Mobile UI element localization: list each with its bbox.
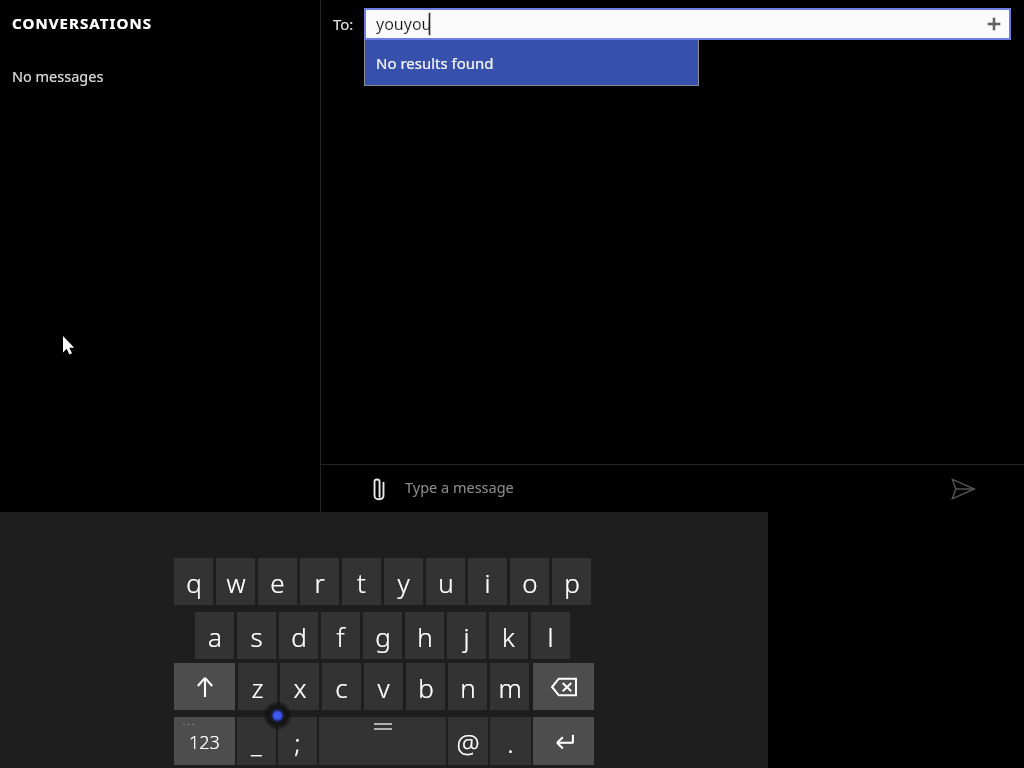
button[interactable]: a <box>195 612 234 659</box>
staticText: r <box>314 565 325 600</box>
staticText: f <box>336 619 345 654</box>
staticText: h <box>417 619 433 654</box>
button[interactable]: m <box>490 663 529 710</box>
button[interactable]: z <box>238 663 277 710</box>
button[interactable]: e <box>258 558 297 605</box>
button[interactable]: enter <box>533 717 594 765</box>
button[interactable]: y <box>384 558 423 605</box>
staticText: To: <box>333 14 354 34</box>
staticText: k <box>502 619 515 654</box>
button[interactable]: o <box>510 558 549 605</box>
button[interactable]: p <box>552 558 591 605</box>
staticText: s <box>250 619 263 654</box>
button[interactable]: j <box>447 612 486 659</box>
staticText: _ <box>251 725 262 760</box>
button[interactable]: Send <box>939 465 987 512</box>
button[interactable]: r <box>300 558 339 605</box>
button[interactable]: Attach <box>357 467 401 511</box>
button[interactable]: u <box>426 558 465 605</box>
staticText: CONVERSATIONS <box>12 13 153 33</box>
staticText: t <box>357 565 366 600</box>
staticText: . <box>507 725 514 760</box>
staticText: z <box>251 670 264 705</box>
button[interactable]: . <box>490 717 531 765</box>
button[interactable]: shift <box>174 663 235 710</box>
button[interactable]: _ <box>237 717 276 765</box>
button[interactable]: w <box>216 558 255 605</box>
staticText: c <box>335 670 348 705</box>
staticText: a <box>208 619 222 654</box>
button[interactable]: l <box>531 612 570 659</box>
staticText: @ <box>456 725 480 760</box>
staticText: No messages <box>12 66 104 86</box>
staticText: l <box>547 619 554 654</box>
button[interactable]: q <box>174 558 213 605</box>
staticText: n <box>460 670 476 705</box>
staticText: w <box>226 565 246 600</box>
staticText: youyou <box>376 13 432 35</box>
button[interactable]: g <box>363 612 402 659</box>
button[interactable]: No messages <box>0 57 320 95</box>
staticText: j <box>463 619 470 654</box>
staticText: p <box>564 565 580 600</box>
staticText: e <box>270 565 285 600</box>
button[interactable]: k <box>489 612 528 659</box>
button[interactable]: backspace <box>533 663 594 710</box>
staticText: ; <box>294 725 301 760</box>
staticText: d <box>291 619 307 654</box>
staticText: y <box>397 565 410 600</box>
staticText: g <box>375 619 391 654</box>
staticText: m <box>498 670 522 705</box>
button[interactable]: c <box>322 663 361 710</box>
button[interactable]: x <box>280 663 319 710</box>
staticText: v <box>377 670 390 705</box>
staticText: b <box>418 670 434 705</box>
button[interactable]: 123 <box>174 717 235 765</box>
staticText: i <box>484 565 491 600</box>
button[interactable]: @ <box>448 717 488 765</box>
staticText: Type a message <box>405 477 514 497</box>
button[interactable]: ; <box>278 717 317 765</box>
staticText: o <box>522 565 538 600</box>
button[interactable]: b <box>406 663 445 710</box>
staticText: No results found <box>376 53 494 73</box>
button[interactable]: i <box>468 558 507 605</box>
button[interactable] <box>319 717 446 765</box>
staticText: q <box>186 565 202 600</box>
button[interactable]: n <box>448 663 487 710</box>
button[interactable]: t <box>342 558 381 605</box>
button[interactable]: youyou <box>366 10 1009 38</box>
button[interactable]: s <box>237 612 276 659</box>
staticText: u <box>438 565 454 600</box>
button[interactable]: v <box>364 663 403 710</box>
button[interactable]: f <box>321 612 360 659</box>
button[interactable]: h <box>405 612 444 659</box>
staticText: 123 <box>189 730 220 755</box>
button[interactable]: d <box>279 612 318 659</box>
button[interactable]: No results found <box>365 40 698 85</box>
staticText: x <box>293 670 307 705</box>
